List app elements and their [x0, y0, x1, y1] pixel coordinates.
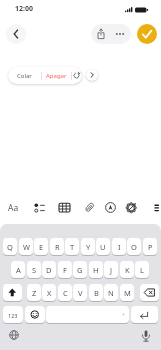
staticText: W	[23, 242, 30, 252]
button[interactable]: N	[104, 284, 118, 302]
staticText: 12:00	[15, 4, 33, 14]
button[interactable]: T	[65, 238, 79, 256]
button[interactable]: V	[73, 284, 87, 302]
staticText: S	[32, 265, 37, 275]
staticText: D	[46, 265, 52, 275]
button[interactable]: C	[58, 284, 72, 302]
staticText: C	[63, 288, 68, 298]
staticText: N	[108, 288, 114, 298]
staticText: Y	[86, 242, 91, 252]
staticText: L	[140, 265, 144, 275]
button[interactable]: Q	[3, 238, 17, 256]
button[interactable]	[91, 24, 111, 44]
staticText: 123	[8, 312, 18, 319]
button[interactable]	[137, 24, 157, 44]
button[interactable]: M	[120, 284, 134, 302]
button[interactable]: Colar	[8, 67, 41, 84]
button[interactable]: U	[96, 238, 110, 256]
button[interactable]: P	[143, 238, 157, 256]
staticText: H	[93, 265, 99, 275]
staticText: M	[124, 288, 131, 298]
staticText: Q	[7, 242, 13, 252]
staticText: O	[131, 242, 137, 252]
staticText: R	[55, 242, 60, 252]
staticText: K	[125, 265, 130, 275]
button[interactable]: R	[50, 238, 64, 256]
button[interactable]: Y	[81, 238, 95, 256]
button[interactable]	[86, 69, 98, 81]
button[interactable]: S	[27, 261, 41, 279]
button[interactable]: X	[42, 284, 56, 302]
button[interactable]: L	[135, 261, 149, 279]
button[interactable]	[71, 67, 82, 84]
button[interactable]	[102, 199, 119, 216]
button[interactable]	[131, 306, 158, 324]
button[interactable]	[30, 199, 47, 216]
staticText: G	[77, 265, 83, 275]
staticText: Aa	[8, 202, 19, 214]
button[interactable]: K	[120, 261, 134, 279]
staticText: J	[110, 265, 113, 275]
staticText: F	[63, 265, 67, 275]
staticText: X	[47, 288, 52, 298]
button[interactable]	[46, 306, 129, 324]
button[interactable]: B	[89, 284, 103, 302]
staticText: Apagar	[46, 72, 67, 80]
staticText: B	[94, 288, 99, 298]
button[interactable]	[137, 327, 155, 345]
staticText: E	[39, 242, 44, 252]
button[interactable]	[25, 306, 45, 324]
button[interactable]: G	[73, 261, 87, 279]
button[interactable]: O	[127, 238, 141, 256]
button[interactable]	[6, 24, 26, 44]
button[interactable]: Aa	[5, 199, 22, 216]
staticText: Z	[32, 288, 37, 298]
staticText: T	[70, 242, 75, 252]
staticText: Colar	[17, 72, 32, 80]
button[interactable]: Apagar	[42, 67, 70, 84]
button[interactable]: D	[42, 261, 56, 279]
button[interactable]: Z	[27, 284, 41, 302]
button[interactable]	[56, 199, 73, 216]
staticText: P	[148, 242, 153, 252]
button[interactable]: H	[89, 261, 103, 279]
staticText: U	[100, 242, 106, 252]
button[interactable]	[3, 284, 22, 302]
button[interactable]: J	[104, 261, 118, 279]
button[interactable]: 123	[3, 306, 23, 324]
button[interactable]: F	[58, 261, 72, 279]
button[interactable]	[81, 199, 98, 216]
button[interactable]: W	[19, 238, 33, 256]
button[interactable]	[111, 24, 131, 44]
staticText: A	[16, 265, 21, 275]
button[interactable]: E	[34, 238, 48, 256]
button[interactable]	[5, 326, 23, 344]
button[interactable]	[140, 284, 159, 302]
staticText: I	[118, 242, 121, 252]
staticText: V	[78, 288, 83, 298]
button[interactable]	[123, 199, 140, 216]
button[interactable]: I	[112, 238, 126, 256]
button[interactable]: A	[11, 261, 25, 279]
button[interactable]	[152, 199, 161, 216]
